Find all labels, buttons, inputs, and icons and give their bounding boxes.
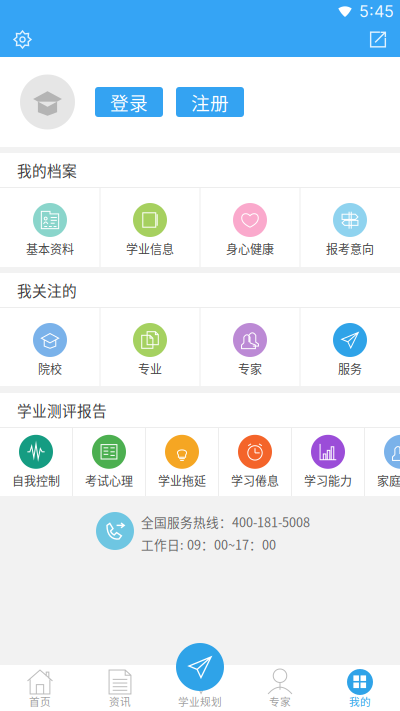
button[interactable]: 院校 (0, 308, 99, 386)
staticText: 登录 (110, 88, 148, 115)
button[interactable]: 专家 (200, 308, 299, 386)
button[interactable]: 基本资料 (0, 188, 99, 267)
staticText: 学业规划 (178, 693, 222, 709)
staticText: 服务 (338, 360, 362, 377)
staticText: 全国服务热线：400-181-5008 (141, 513, 310, 531)
button[interactable]: 设置 (8, 25, 37, 54)
button[interactable]: 分享 (364, 25, 392, 53)
staticText: 注册 (191, 88, 229, 115)
button[interactable]: 学业规划 (160, 665, 240, 711)
staticText: 学习能力 (304, 472, 352, 489)
button[interactable]: 身心健康 (200, 188, 299, 267)
staticText: 学习倦息 (231, 472, 279, 489)
button[interactable]: 学业信息 (100, 188, 199, 267)
staticText: 专家 (238, 360, 262, 377)
button[interactable]: 学习能力 (292, 428, 364, 496)
button[interactable]: 学习倦息 (219, 428, 291, 496)
button[interactable]: 首页 (0, 665, 80, 711)
button[interactable]: 报考意向 (300, 188, 399, 267)
staticText: 专业 (138, 360, 162, 377)
button[interactable] (160, 643, 240, 711)
staticText: 院校 (38, 360, 62, 377)
staticText: 我的 (349, 693, 371, 709)
button[interactable]: 考试心理 (73, 428, 145, 496)
button[interactable]: 登录 (95, 87, 163, 117)
staticText: 我的档案 (17, 159, 77, 181)
staticText: 报考意向 (326, 240, 374, 257)
staticText: 自我控制 (12, 472, 60, 489)
staticText: 工作日: 09：00~17：00 (141, 535, 276, 553)
staticText: 基本资料 (26, 240, 74, 257)
button[interactable]: 专业 (100, 308, 199, 386)
staticText: 5:45 (359, 2, 394, 21)
button[interactable]: 资讯 (80, 665, 160, 711)
staticText: 学业信息 (126, 240, 174, 257)
button[interactable]: 学业拖延 (146, 428, 218, 496)
staticText: 我关注的 (17, 279, 77, 301)
staticText: 资讯 (109, 693, 131, 709)
staticText: 首页 (29, 693, 51, 709)
button[interactable]: 家庭教育 (365, 428, 400, 496)
staticText: 考试心理 (85, 472, 133, 489)
button[interactable]: 自我控制 (0, 428, 72, 496)
button[interactable]: 专家 (240, 665, 320, 711)
staticText: 家庭教育 (377, 472, 400, 489)
button[interactable]: 注册 (176, 87, 244, 117)
button[interactable]: 我的 (320, 665, 400, 711)
staticText: 身心健康 (226, 240, 274, 257)
staticText: 学业测评报告 (17, 399, 107, 421)
staticText: 专家 (269, 693, 291, 709)
button[interactable]: 服务 (300, 308, 399, 386)
staticText: 学业拖延 (158, 472, 206, 489)
